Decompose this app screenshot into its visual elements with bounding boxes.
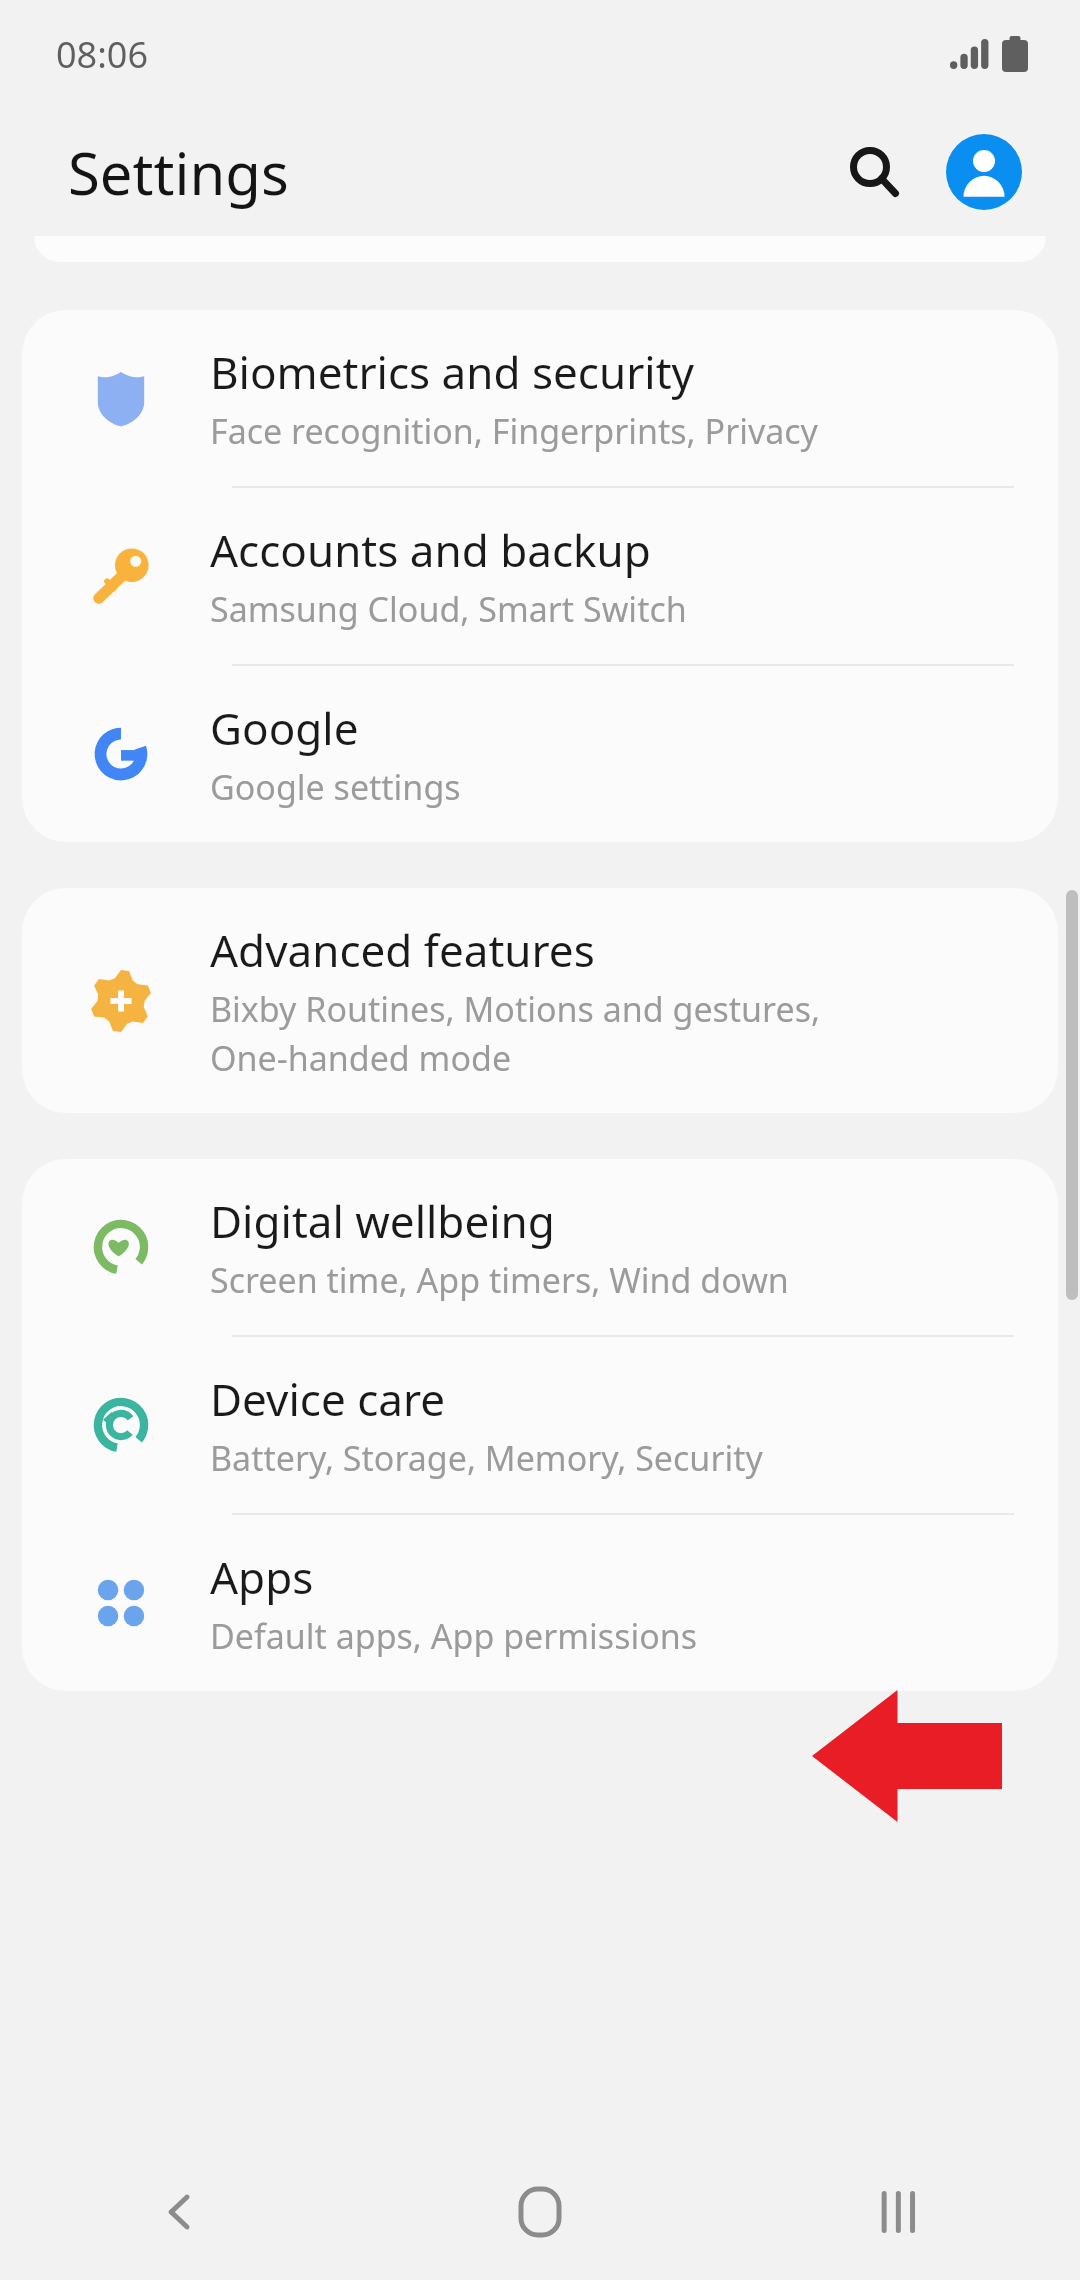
staticText: Device care (210, 1369, 446, 1429)
button[interactable]: Recents (720, 2144, 1080, 2280)
staticText: Screen time, App timers, Wind down (210, 1257, 789, 1303)
staticText: Digital wellbeing (210, 1191, 555, 1251)
button[interactable]: Advanced features (22, 888, 1058, 1113)
button[interactable]: Apps (22, 1515, 1058, 1691)
staticText: Bixby Routines, Motions and gestures, On… (210, 986, 821, 1081)
button[interactable]: Back (0, 2144, 360, 2280)
staticText: Default apps, App permissions (210, 1613, 698, 1659)
staticText: Accounts and backup (210, 520, 651, 580)
button[interactable]: Accounts and backup (22, 488, 1058, 664)
button[interactable]: Biometrics and security (22, 310, 1058, 486)
staticText: Biometrics and security (210, 342, 694, 402)
staticText: Apps (210, 1547, 314, 1607)
staticText: Face recognition, Fingerprints, Privacy (210, 408, 818, 454)
staticText: 08:06 (56, 30, 149, 79)
button[interactable]: Account (936, 124, 1032, 220)
button[interactable]: Search (826, 124, 922, 220)
button[interactable]: Digital wellbeing (22, 1159, 1058, 1335)
button[interactable]: Home (360, 2144, 720, 2280)
staticText: Battery, Storage, Memory, Security (210, 1435, 763, 1481)
button[interactable]: Device care (22, 1337, 1058, 1513)
staticText: Samsung Cloud, Smart Switch (210, 586, 687, 632)
staticText: Advanced features (210, 920, 595, 980)
staticText: Google (210, 698, 359, 758)
staticText: Settings (68, 133, 289, 212)
button[interactable]: Google (22, 666, 1058, 842)
staticText: Google settings (210, 764, 461, 810)
